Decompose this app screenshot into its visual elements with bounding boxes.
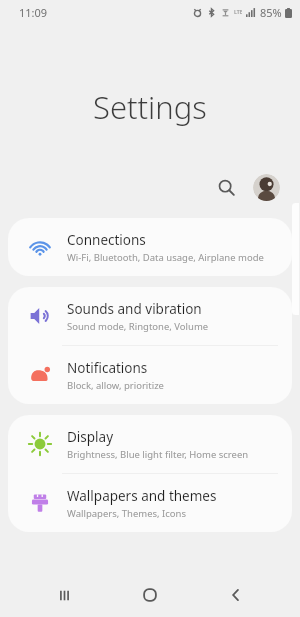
staticText: Connections: [67, 231, 146, 249]
button[interactable]: Display: [8, 415, 292, 473]
staticText: LTE: [234, 9, 243, 16]
staticText: Display: [67, 428, 114, 446]
button[interactable]: Back: [214, 573, 258, 617]
staticText: Wallpapers and themes: [67, 487, 217, 505]
staticText: Settings: [93, 86, 207, 128]
staticText: Block, allow, prioritize: [67, 379, 164, 392]
button[interactable]: Notifications: [8, 346, 292, 404]
staticText: Notifications: [67, 359, 148, 377]
button[interactable]: Wallpapers and themes: [8, 474, 292, 532]
staticText: 11:09: [19, 5, 48, 20]
button[interactable]: Connections: [8, 218, 292, 276]
staticText: Wi-Fi, Bluetooth, Data usage, Airplane m…: [67, 251, 264, 264]
button[interactable]: Recents: [42, 573, 86, 617]
staticText: Sounds and vibration: [67, 300, 202, 318]
staticText: 85%: [260, 5, 282, 20]
staticText: Brightness, Blue light filter, Home scre…: [67, 448, 249, 461]
button[interactable]: Home: [128, 573, 172, 617]
staticText: Wallpapers, Themes, Icons: [67, 507, 187, 520]
button[interactable]: Search: [209, 170, 243, 204]
staticText: Sound mode, Ringtone, Volume: [67, 320, 209, 333]
button[interactable]: Sounds and vibration: [8, 287, 292, 345]
button[interactable]: Profile: [253, 174, 280, 201]
